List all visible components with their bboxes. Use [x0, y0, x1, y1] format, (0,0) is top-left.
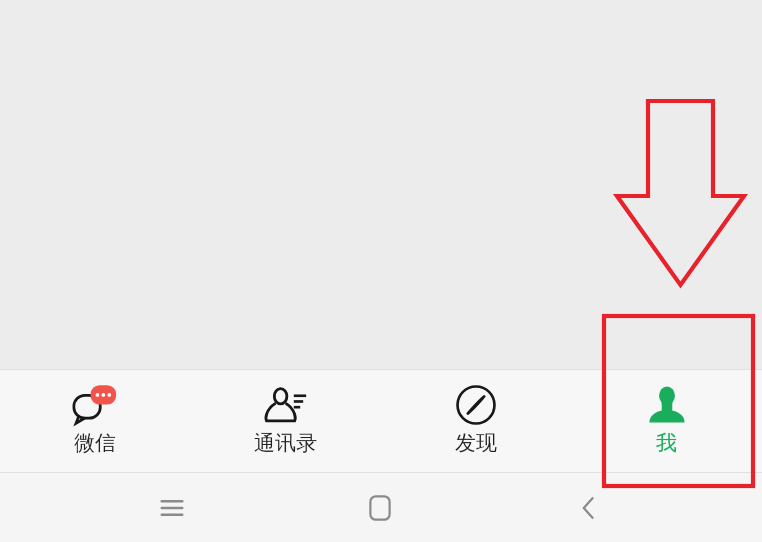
button[interactable]: 我	[571, 370, 762, 472]
staticText: 发现	[455, 430, 497, 456]
button[interactable]: 发现	[380, 370, 571, 472]
button[interactable]: Recent apps	[136, 473, 208, 542]
button[interactable]: Home	[344, 473, 416, 542]
button[interactable]: 通讯录	[190, 370, 380, 472]
button[interactable]: Back	[553, 473, 625, 542]
staticText: 通讯录	[254, 430, 317, 456]
button[interactable]: 微信	[0, 370, 190, 472]
staticText: 我	[656, 430, 677, 456]
staticText: 微信	[74, 430, 116, 456]
